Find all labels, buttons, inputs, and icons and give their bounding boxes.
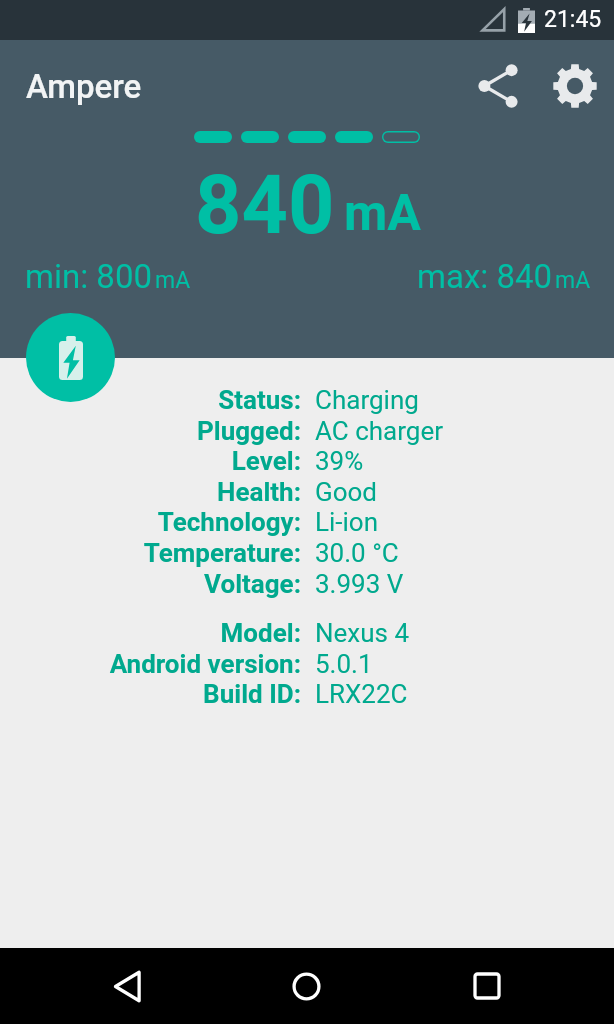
button[interactable]: Share <box>474 62 522 110</box>
button[interactable]: Back <box>65 948 190 1024</box>
staticText: 840 <box>195 158 335 253</box>
staticText: 39% <box>315 446 364 476</box>
staticText: Status: <box>218 385 301 415</box>
button[interactable]: Home <box>244 948 369 1024</box>
button[interactable]: Recents <box>424 948 549 1024</box>
staticText: Health: <box>217 477 301 507</box>
staticText: 30.0 °C <box>315 538 399 568</box>
staticText: Nexus 4 <box>315 618 410 648</box>
staticText: Ampere <box>26 67 142 106</box>
staticText: min: 800 <box>25 257 153 296</box>
staticText: mA <box>555 267 591 294</box>
staticText: mA <box>344 184 421 243</box>
staticText: Temperature: <box>143 538 301 568</box>
staticText: Android version: <box>109 649 301 679</box>
staticText: LRX22C <box>315 679 408 709</box>
staticText: mA <box>155 267 191 294</box>
staticText: 3.993 V <box>315 569 404 599</box>
staticText: 5.0.1 <box>315 649 373 679</box>
staticText: Good <box>315 477 378 507</box>
staticText: AC charger <box>315 416 444 446</box>
staticText: Build ID: <box>203 679 301 709</box>
staticText: 21:45 <box>544 6 602 33</box>
staticText: Voltage: <box>204 569 301 599</box>
staticText: Charging <box>315 385 419 415</box>
button[interactable]: Measure <box>26 313 115 402</box>
staticText: Level: <box>231 446 301 476</box>
staticText: max: 840 <box>417 257 553 296</box>
staticText: Plugged: <box>197 416 301 446</box>
button[interactable]: Settings <box>551 62 599 110</box>
staticText: Li-ion <box>315 507 379 537</box>
staticText: Model: <box>220 618 301 648</box>
staticText: Technology: <box>157 507 301 537</box>
